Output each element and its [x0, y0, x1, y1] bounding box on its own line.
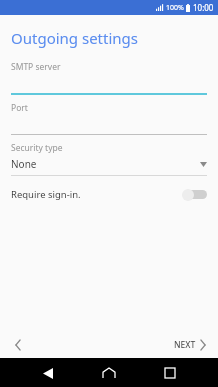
button[interactable]: Port — [0, 102, 218, 135]
staticText: NEXT — [174, 339, 196, 351]
staticText: Security type — [11, 142, 63, 154]
staticText: Outgoing settings — [11, 28, 138, 48]
button[interactable]: Back — [35, 360, 61, 386]
button[interactable]: SMTP server — [0, 61, 218, 95]
staticText: SMTP server — [11, 61, 61, 73]
button[interactable]: NEXT — [171, 336, 209, 354]
staticText: 100% — [166, 3, 184, 13]
staticText: None — [11, 157, 200, 171]
button[interactable]: Home — [96, 360, 122, 386]
staticText: Port — [11, 102, 28, 114]
staticText: Require sign-in. — [11, 188, 182, 201]
button[interactable]: Back — [9, 336, 27, 354]
button[interactable]: Recent apps — [157, 360, 183, 386]
button[interactable]: Require sign-in. — [0, 184, 218, 205]
button[interactable]: Security type — [0, 142, 218, 176]
staticText: 10:00 — [193, 2, 214, 13]
other: Open security type dropdown — [200, 162, 207, 167]
